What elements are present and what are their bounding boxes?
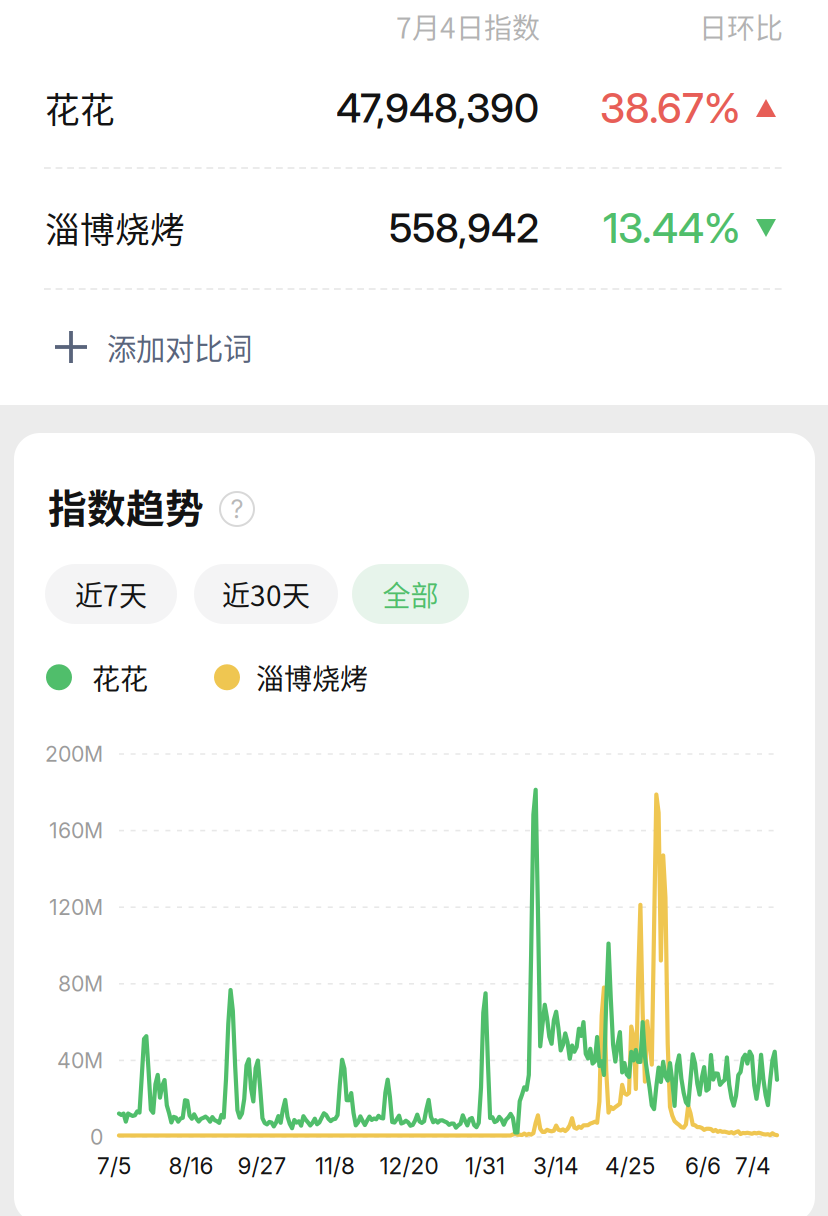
staticText: 3/14 (533, 1152, 579, 1180)
staticText: 淄博烧烤 (45, 203, 185, 253)
staticText: 13.44% (603, 203, 740, 253)
staticText: 40M (57, 1047, 103, 1073)
staticText: 47,948,390 (336, 84, 539, 132)
staticText: 7月4日指数 (396, 6, 540, 46)
staticText: 160M (49, 818, 103, 843)
staticText: 80M (58, 971, 103, 997)
button[interactable]: 近7天 (45, 564, 177, 624)
button[interactable]: 全部 (352, 564, 469, 624)
staticText: 1/31 (465, 1152, 505, 1180)
staticText: 近30天 (222, 574, 310, 614)
staticText: 7/4 (735, 1152, 771, 1180)
staticText: 6/6 (685, 1152, 721, 1180)
staticText: 9/27 (237, 1152, 286, 1180)
button[interactable]: 近30天 (194, 564, 338, 624)
staticText: 11/8 (315, 1152, 355, 1180)
staticText: 全部 (382, 574, 438, 614)
staticText: 120M (49, 894, 103, 920)
staticText: 0 (90, 1124, 103, 1150)
staticText: 12/20 (379, 1152, 438, 1180)
staticText: 7/5 (97, 1152, 131, 1180)
staticText: 8/16 (168, 1152, 213, 1180)
staticText: 添加对比词 (107, 326, 252, 368)
staticText: ? (230, 494, 243, 524)
staticText: 4/25 (605, 1152, 655, 1180)
button[interactable]: 添加对比词 (0, 291, 828, 403)
staticText: 近7天 (75, 574, 147, 614)
staticText: 淄博烧烤 (256, 657, 368, 697)
button[interactable]: 淄博烧烤 (0, 168, 828, 288)
staticText: 558,942 (389, 204, 539, 252)
staticText: 指数趋势 (48, 478, 204, 534)
button[interactable]: 帮助 (220, 492, 254, 526)
staticText: 花花 (45, 83, 115, 133)
button[interactable]: 花花 (0, 48, 828, 168)
staticText: 日环比 (699, 6, 783, 46)
staticText: 38.67% (600, 83, 740, 133)
staticText: 200M (45, 741, 103, 767)
staticText: 花花 (92, 657, 148, 697)
